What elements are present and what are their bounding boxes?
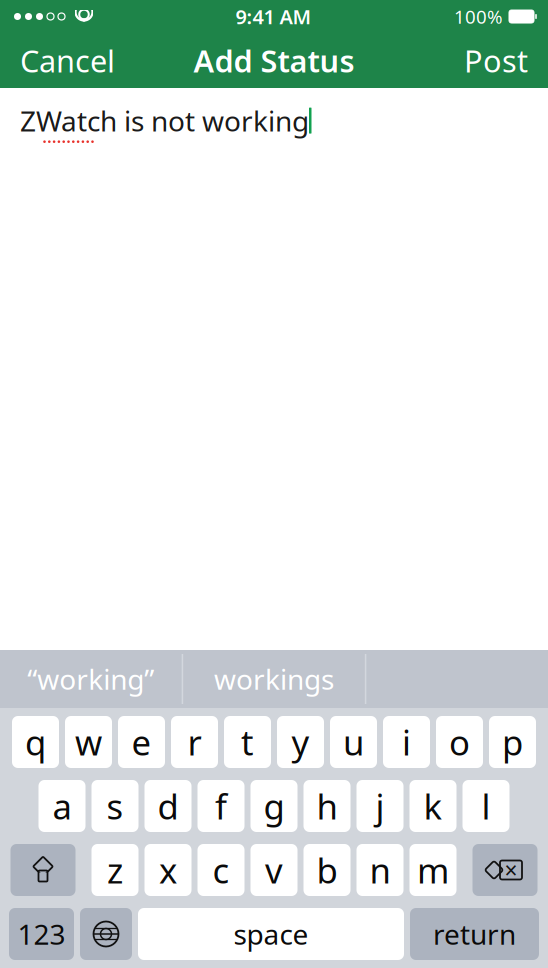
staticText: o [449, 719, 470, 765]
staticText: s [106, 783, 123, 829]
staticText: × [504, 855, 517, 885]
button[interactable]: d [144, 780, 191, 832]
staticText: w [75, 719, 102, 765]
staticText: is not working [117, 102, 309, 139]
staticText: j [375, 783, 384, 829]
staticText: h [316, 783, 337, 829]
button[interactable]: q [12, 716, 59, 768]
staticText: b [316, 847, 337, 893]
button[interactable]: u [330, 716, 377, 768]
button[interactable]: t [224, 716, 271, 768]
button[interactable]: Shift [10, 844, 75, 896]
button[interactable]: k [409, 780, 456, 832]
button[interactable]: o [436, 716, 483, 768]
button[interactable]: return [410, 908, 539, 960]
button[interactable]: p [489, 716, 536, 768]
staticText: m [417, 847, 449, 893]
button[interactable]: s [91, 780, 138, 832]
staticText: z [107, 847, 123, 893]
button[interactable]: l [462, 780, 509, 832]
button[interactable]: 123 [9, 908, 74, 960]
button[interactable]: Cancel [0, 33, 135, 88]
staticText: “working” [27, 660, 154, 698]
button[interactable]: workings [183, 650, 365, 708]
staticText: q [25, 719, 46, 765]
button[interactable]: z [91, 844, 138, 896]
staticText: a [52, 783, 71, 829]
staticText: Add Status [193, 40, 354, 81]
button[interactable]: b [303, 844, 350, 896]
button[interactable]: n [356, 844, 403, 896]
staticText: i [402, 719, 411, 765]
staticText: Cancel [20, 40, 115, 81]
staticText: 123 [17, 915, 65, 953]
button[interactable]: v [250, 844, 297, 896]
staticText: ZWatch [20, 102, 117, 139]
staticText: p [502, 719, 523, 765]
staticText: 9:41 AM [235, 3, 311, 30]
button[interactable]: Switch keyboard [80, 908, 132, 960]
button[interactable]: f [197, 780, 244, 832]
button[interactable]: Delete [472, 844, 537, 896]
button[interactable]: g [250, 780, 297, 832]
button[interactable]: i [383, 716, 430, 768]
staticText: f [215, 783, 227, 829]
staticText: r [187, 719, 201, 765]
staticText: g [263, 783, 284, 829]
staticText: v [265, 847, 283, 893]
staticText: c [212, 847, 229, 893]
button[interactable]: y [277, 716, 324, 768]
button[interactable]: x [144, 844, 191, 896]
button[interactable]: j [356, 780, 403, 832]
button[interactable]: “working” [0, 650, 182, 708]
button[interactable]: w [65, 716, 112, 768]
staticText: return [433, 915, 516, 953]
button[interactable]: space [138, 908, 404, 960]
staticText: l [481, 783, 490, 829]
button[interactable]: e [118, 716, 165, 768]
button[interactable]: c [197, 844, 244, 896]
staticText: n [369, 847, 390, 893]
staticText: x [159, 847, 177, 893]
staticText: 100% [454, 4, 503, 29]
staticText: k [423, 783, 442, 829]
staticText: u [343, 719, 364, 765]
staticText: space [233, 915, 308, 953]
staticText: d [157, 783, 178, 829]
staticText: t [241, 719, 254, 765]
staticText: e [131, 719, 151, 765]
staticText: Post [464, 40, 528, 81]
button[interactable]: h [303, 780, 350, 832]
button[interactable]: m [409, 844, 456, 896]
staticText: workings [214, 660, 334, 698]
button[interactable]: r [171, 716, 218, 768]
button[interactable]: Post [444, 33, 548, 88]
staticText: y [291, 719, 309, 765]
button[interactable]: a [38, 780, 85, 832]
